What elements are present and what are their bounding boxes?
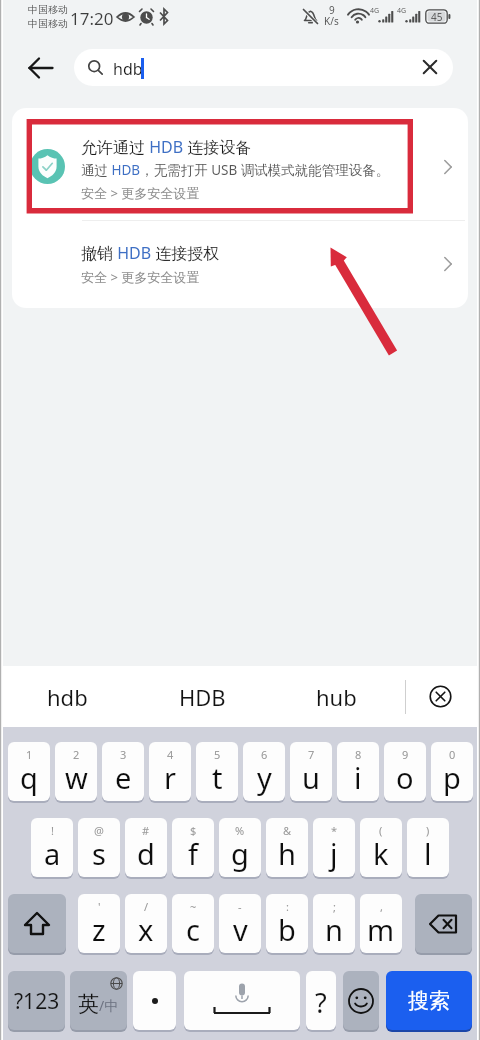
staticText: 1 <box>26 747 33 762</box>
button[interactable]: $ <box>172 818 214 877</box>
button[interactable]: hdb <box>22 676 112 718</box>
button[interactable]: 4 <box>149 742 191 801</box>
staticText: e <box>115 758 132 797</box>
button[interactable]: : <box>266 894 308 953</box>
staticText: 45 <box>431 10 443 24</box>
staticText: ? <box>315 984 327 1021</box>
staticText: 9 <box>402 747 409 762</box>
button[interactable]: ) <box>407 818 449 877</box>
button[interactable]: / <box>125 894 167 953</box>
button[interactable]: Emoji <box>343 971 379 1030</box>
staticText: 中国移动 <box>28 3 68 16</box>
staticText: m <box>367 910 395 949</box>
button[interactable]: 允许通过 HDB 连接设备 <box>12 108 468 220</box>
button[interactable]: , <box>360 894 402 953</box>
button[interactable]: * <box>313 818 355 877</box>
staticText: u <box>302 758 320 797</box>
staticText: , <box>380 899 383 914</box>
staticText: % <box>235 823 245 838</box>
staticText: r <box>164 758 176 797</box>
button[interactable]: Back <box>20 47 62 89</box>
button[interactable]: 9 <box>384 742 426 801</box>
staticText: 4 <box>167 747 174 762</box>
button[interactable]: % <box>219 818 261 877</box>
staticText: $ <box>190 823 197 838</box>
staticText: 撤销 HDB 连接授权 <box>81 242 220 264</box>
staticText: hub <box>316 682 357 712</box>
button[interactable]: ! <box>31 818 73 877</box>
staticText: d <box>137 834 155 873</box>
staticText: 0 <box>449 747 456 762</box>
button[interactable]: 6 <box>243 742 285 801</box>
button[interactable]: HDB <box>157 676 247 718</box>
button[interactable]: 撤销 HDB 连接授权 <box>12 221 468 308</box>
staticText: b <box>278 910 296 949</box>
button[interactable]: # <box>125 818 167 877</box>
staticText: / <box>144 899 149 914</box>
staticText: 7 <box>308 747 315 762</box>
staticText: 4G <box>370 6 380 16</box>
staticText: k <box>373 834 389 873</box>
staticText: ( <box>379 823 383 838</box>
staticText: ! <box>51 823 54 838</box>
button[interactable]: ~ <box>172 894 214 953</box>
staticText: l <box>424 834 432 873</box>
staticText: 英/中 <box>78 991 119 1017</box>
button[interactable]: 0 <box>431 742 473 801</box>
button[interactable]: Question mark <box>306 971 336 1030</box>
staticText: - <box>238 899 242 914</box>
button[interactable]: 8 <box>337 742 379 801</box>
button[interactable]: Period <box>133 971 176 1030</box>
staticText: ?123 <box>14 987 60 1016</box>
button[interactable]: Switch language <box>70 971 127 1030</box>
button[interactable]: @ <box>78 818 120 877</box>
staticText: c <box>186 910 200 949</box>
staticText: @ <box>94 823 104 838</box>
staticText: 5 <box>214 747 221 762</box>
staticText: s <box>92 834 106 873</box>
staticText: q <box>20 758 38 797</box>
staticText: 中国移动 <box>28 17 68 30</box>
button[interactable]: & <box>266 818 308 877</box>
button[interactable]: Backspace <box>415 894 472 953</box>
staticText: ) <box>426 823 430 838</box>
staticText: 通过 HDB，无需打开 USB 调试模式就能管理设备。 <box>81 161 390 179</box>
staticText: t <box>212 758 223 797</box>
staticText: 2 <box>73 747 80 762</box>
staticText: a <box>44 834 61 873</box>
button[interactable]: 5 <box>196 742 238 801</box>
staticText: 8 <box>355 747 362 762</box>
button[interactable]: 2 <box>55 742 97 801</box>
button[interactable]: ' <box>78 894 120 953</box>
staticText: ~ <box>190 899 197 914</box>
staticText: ; <box>333 899 336 914</box>
button[interactable]: Symbols <box>8 971 65 1030</box>
button[interactable]: Clear text <box>418 55 442 79</box>
staticText: w <box>65 758 88 797</box>
button[interactable]: 3 <box>102 742 144 801</box>
button[interactable]: ; <box>313 894 355 953</box>
staticText: 允许通过 HDB 连接设备 <box>81 136 252 158</box>
button[interactable]: 搜索 <box>386 971 472 1030</box>
button[interactable]: 7 <box>290 742 332 801</box>
staticText: i <box>354 758 362 797</box>
button[interactable]: - <box>219 894 261 953</box>
button[interactable]: hdb <box>74 49 453 86</box>
staticText: p <box>443 758 461 797</box>
staticText: 6 <box>261 747 268 762</box>
staticText: o <box>396 758 414 797</box>
staticText: K/s <box>324 14 339 28</box>
staticText: 17:20 <box>70 7 114 30</box>
staticText: 3 <box>120 747 127 762</box>
button[interactable]: Hide keyboard <box>429 685 452 708</box>
button[interactable]: hub <box>291 676 381 718</box>
button[interactable]: 1 <box>8 742 50 801</box>
button[interactable]: ( <box>360 818 402 877</box>
staticText: # <box>142 823 150 838</box>
staticText: h <box>278 834 296 873</box>
staticText: 搜索 <box>408 988 450 1014</box>
staticText: g <box>231 834 249 873</box>
button[interactable]: Shift <box>8 894 66 953</box>
button[interactable]: Space <box>184 971 300 1030</box>
staticText: 安全 > 更多安全设置 <box>81 184 200 202</box>
